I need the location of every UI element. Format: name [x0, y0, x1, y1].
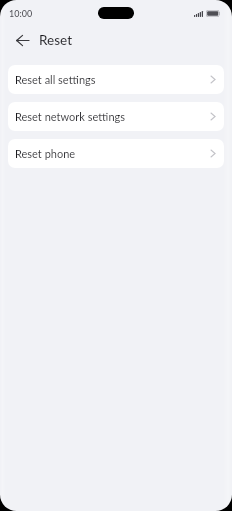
button[interactable]: Back — [10, 28, 35, 53]
button[interactable]: Reset all settings — [8, 65, 224, 94]
staticText: 10:00 — [9, 8, 33, 19]
staticText: Reset all settings — [15, 73, 96, 86]
button[interactable]: Reset phone — [8, 139, 224, 168]
staticText: Reset phone — [15, 147, 76, 160]
staticText: Reset network settings — [15, 110, 126, 123]
staticText: Reset — [39, 32, 73, 48]
button[interactable]: Reset network settings — [8, 102, 224, 131]
